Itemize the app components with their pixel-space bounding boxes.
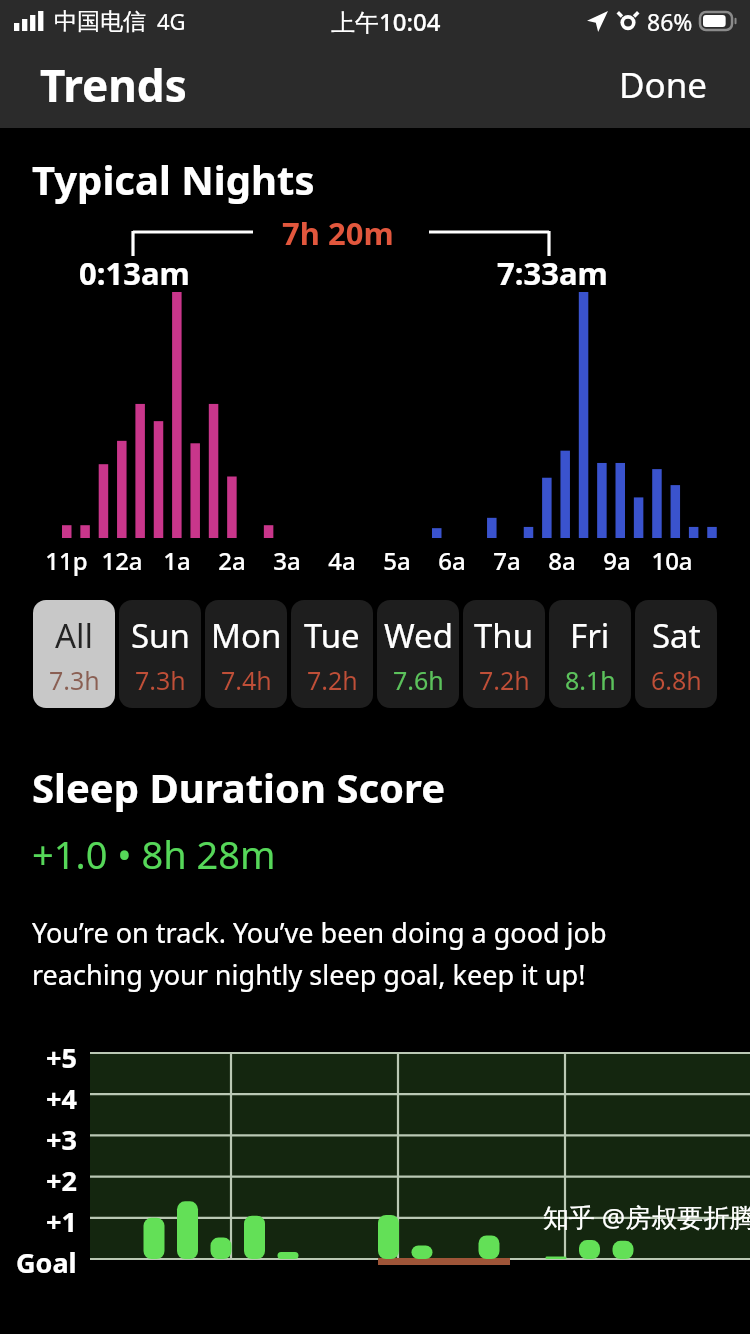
staticText: 10a <box>651 544 693 577</box>
staticText: Trends <box>40 55 187 115</box>
staticText: Tue <box>304 613 360 658</box>
staticText: 5a <box>383 544 411 577</box>
staticText: 7.2h <box>307 663 358 697</box>
staticText: 4G <box>157 6 186 36</box>
button[interactable]: All <box>33 600 115 708</box>
staticText: +3 <box>46 1121 77 1158</box>
staticText: 中国电信 <box>54 7 146 36</box>
button[interactable]: Tue <box>291 600 373 708</box>
button[interactable]: Sat <box>635 600 717 708</box>
staticText: +2 <box>46 1162 77 1199</box>
staticText: 4a <box>328 544 356 577</box>
staticText: 知乎 @房叔要折腾 <box>543 1199 750 1235</box>
staticText: Fri <box>570 613 610 658</box>
staticText: 8a <box>548 544 576 577</box>
staticText: Sleep Duration Score <box>32 760 446 814</box>
staticText: Thu <box>474 613 534 658</box>
staticText: Done <box>619 61 708 109</box>
button[interactable]: Mon <box>205 600 287 708</box>
button[interactable]: Fri <box>549 600 631 708</box>
staticText: All <box>55 613 94 658</box>
staticText: 86% <box>647 6 693 37</box>
staticText: Sun <box>131 613 190 658</box>
staticText: +1 <box>46 1203 77 1240</box>
button[interactable]: Done <box>611 51 716 119</box>
staticText: Mon <box>211 613 282 658</box>
staticText: 7.6h <box>393 663 444 697</box>
staticText: Goal <box>16 1244 77 1281</box>
button[interactable]: Sun <box>119 600 201 708</box>
staticText: You’re on track. You’ve been doing a goo… <box>32 914 722 993</box>
staticText: 3a <box>273 544 301 577</box>
staticText: 1a <box>163 544 191 577</box>
staticText: 7.3h <box>135 663 186 697</box>
staticText: 11p <box>45 544 88 577</box>
staticText: 0:13am <box>79 252 190 294</box>
staticText: 9a <box>603 544 631 577</box>
staticText: Typical Nights <box>32 152 315 206</box>
staticText: Wed <box>384 613 453 658</box>
button[interactable]: Thu <box>463 600 545 708</box>
staticText: 上午10:04 <box>331 5 441 38</box>
staticText: 7.3h <box>49 663 100 697</box>
staticText: 7:33am <box>497 252 608 294</box>
staticText: +5 <box>46 1039 77 1076</box>
staticText: 6.8h <box>651 663 702 697</box>
staticText: 7.2h <box>479 663 530 697</box>
staticText: 6a <box>438 544 466 577</box>
staticText: 8.1h <box>565 663 616 697</box>
staticText: 2a <box>218 544 246 577</box>
staticText: 7.4h <box>221 663 272 697</box>
staticText: 12a <box>101 544 143 577</box>
staticText: +4 <box>46 1080 77 1117</box>
staticText: +1.0 • 8h 28m <box>32 828 276 880</box>
staticText: Sat <box>652 613 701 658</box>
staticText: 7a <box>493 544 521 577</box>
button[interactable]: Wed <box>377 600 459 708</box>
staticText: 7h 20m <box>282 212 394 254</box>
